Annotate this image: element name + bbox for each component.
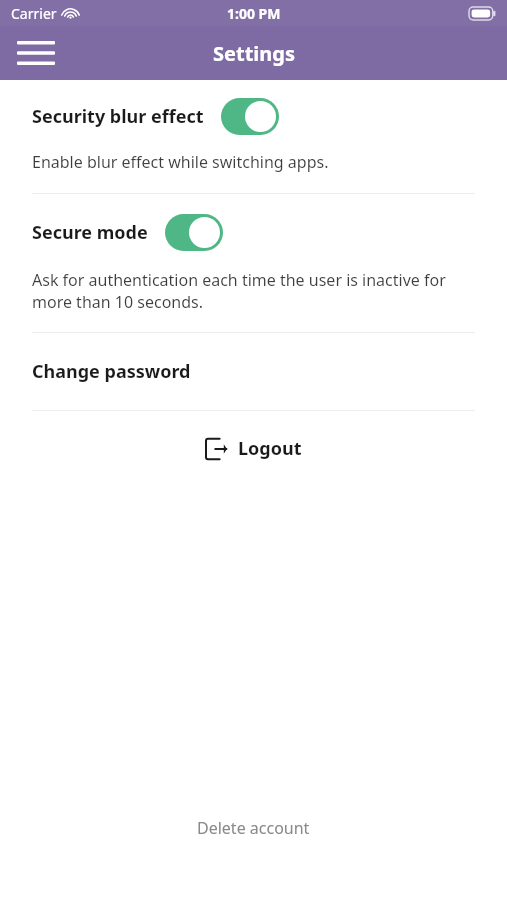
staticText: Enable blur effect while switching apps. (32, 151, 329, 173)
other: Toggle, on (221, 98, 279, 135)
staticText: Logout (238, 436, 302, 461)
staticText: 1:00 PM (227, 4, 281, 23)
button[interactable]: Open navigation menu (8, 29, 64, 77)
staticText: Carrier (11, 4, 57, 23)
staticText: Ask for authentication each time the use… (32, 269, 477, 313)
other: Toggle, on (165, 214, 223, 251)
button[interactable]: Delete account (185, 811, 322, 845)
button[interactable]: Change password (0, 333, 507, 410)
staticText: Settings (213, 40, 295, 67)
staticText: Secure mode (32, 220, 148, 245)
button[interactable]: Secure mode (0, 208, 507, 257)
staticText: Security blur effect (32, 104, 204, 129)
staticText: Change password (32, 359, 191, 384)
button[interactable]: Security blur effect (0, 92, 507, 141)
button[interactable]: Logout (196, 430, 312, 467)
